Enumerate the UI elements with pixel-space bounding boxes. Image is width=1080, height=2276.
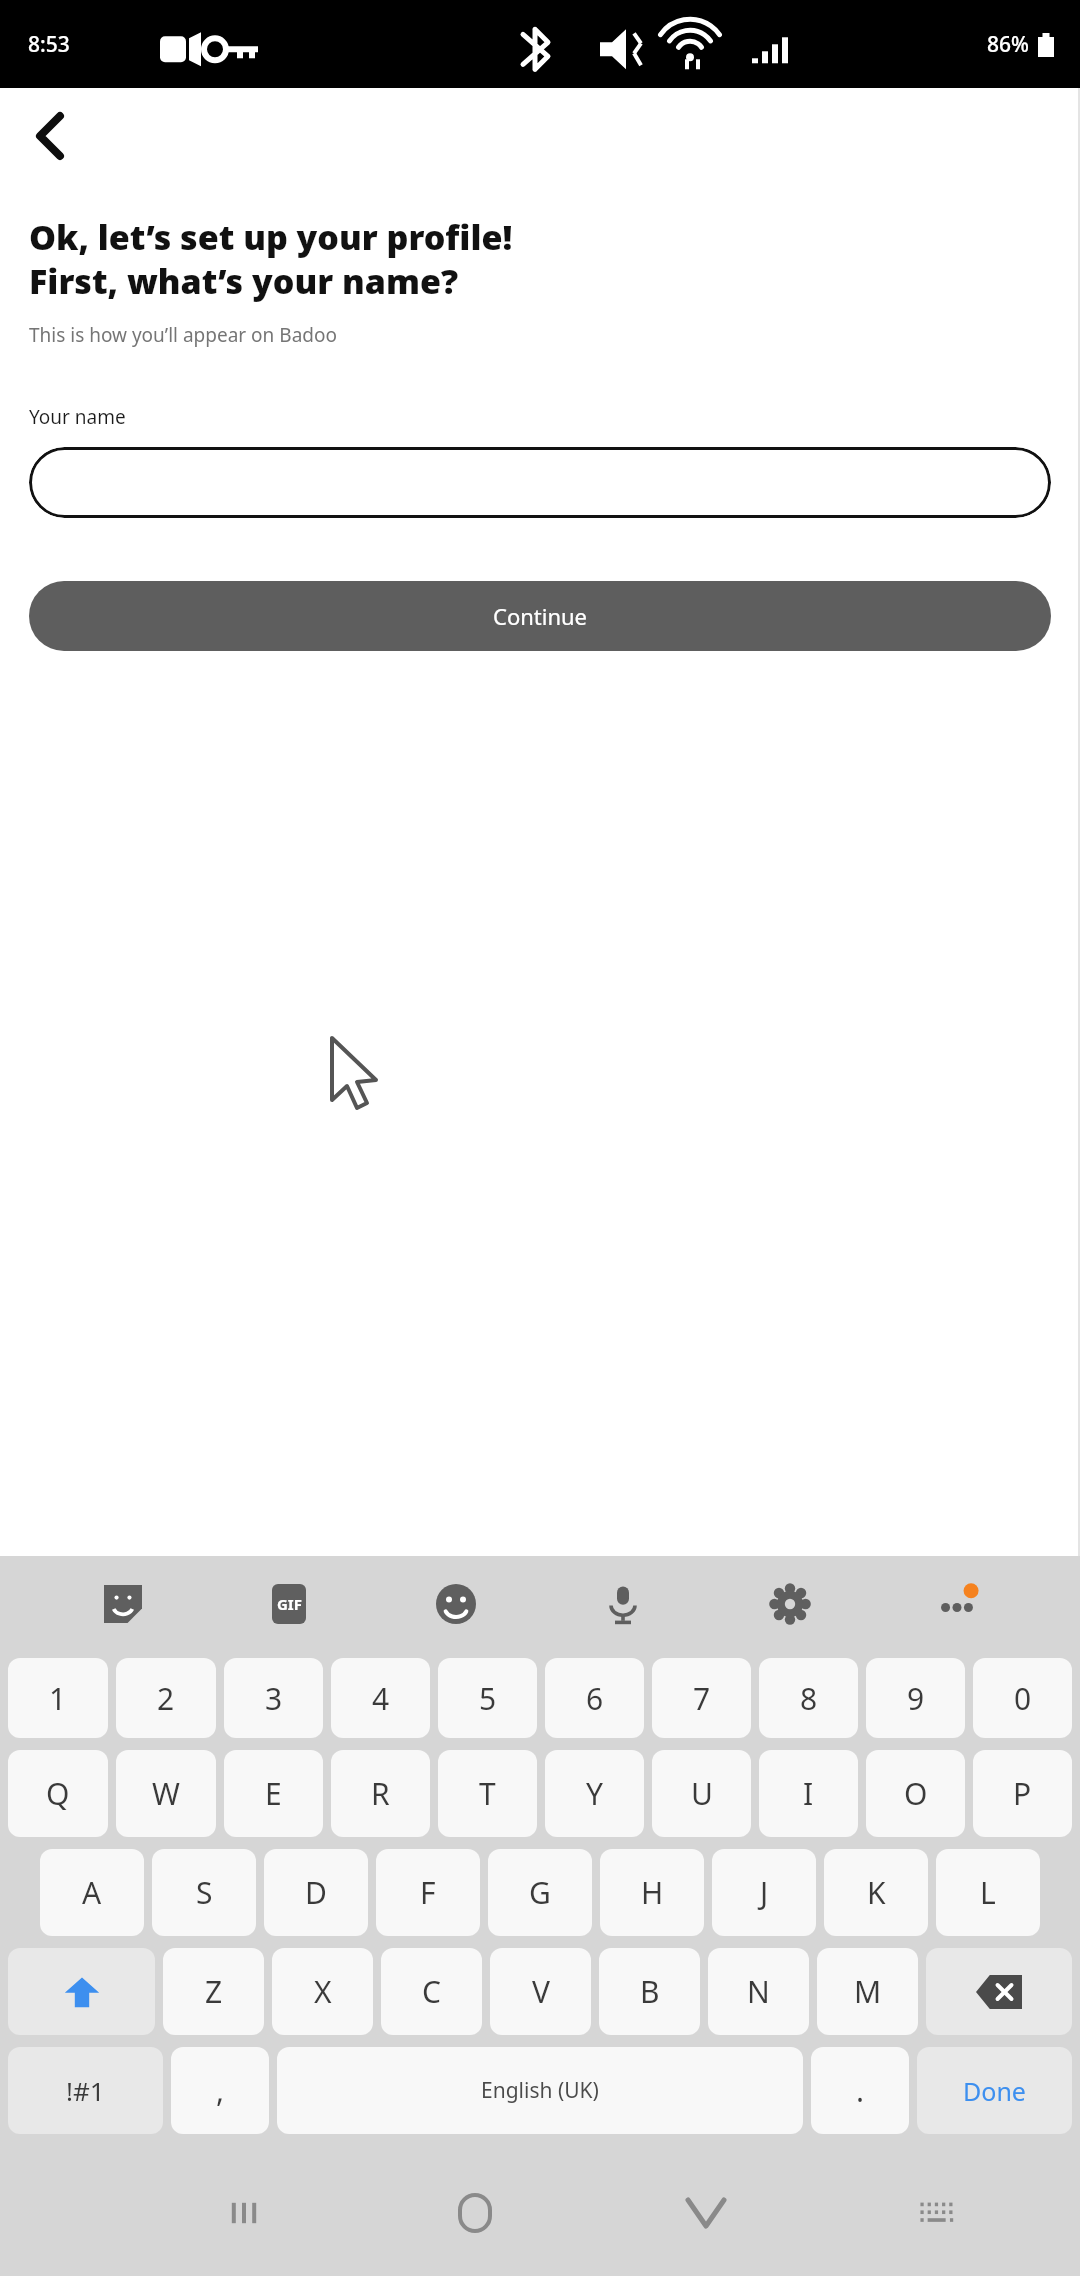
button[interactable]: K	[824, 1849, 928, 1936]
staticText: V	[532, 1971, 550, 2012]
button[interactable]: L	[936, 1849, 1040, 1936]
button[interactable]: J	[712, 1849, 816, 1936]
staticText: A	[82, 1872, 102, 1913]
button[interactable]: 3	[224, 1658, 323, 1738]
button[interactable]: Y	[545, 1750, 644, 1837]
staticText: 8	[800, 1678, 818, 1719]
staticText: ,	[216, 2070, 225, 2111]
staticText: J	[760, 1872, 769, 1913]
button[interactable]: Stickers	[40, 1556, 206, 1652]
button[interactable]: D	[264, 1849, 368, 1936]
button[interactable]: Settings	[706, 1556, 873, 1652]
button[interactable]	[29, 447, 1051, 518]
button[interactable]: W	[116, 1750, 216, 1837]
button[interactable]: Emoji	[372, 1556, 539, 1652]
button[interactable]: 2	[116, 1658, 216, 1738]
staticText: L	[980, 1872, 996, 1913]
button[interactable]: 5	[438, 1658, 537, 1738]
button[interactable]: O	[866, 1750, 965, 1837]
button[interactable]: Hide keyboard	[590, 2150, 821, 2276]
button[interactable]: Backspace	[926, 1948, 1072, 2035]
button[interactable]: H	[600, 1849, 704, 1936]
staticText: G	[529, 1872, 551, 1913]
button[interactable]: Voice input	[539, 1556, 706, 1652]
staticText: Z	[205, 1971, 223, 2012]
staticText: Done	[963, 2074, 1026, 2108]
button[interactable]: 7	[652, 1658, 751, 1738]
button[interactable]: ,	[171, 2047, 269, 2134]
staticText: Ok, let’s set up your profile! First, wh…	[29, 214, 513, 304]
staticText: 9	[907, 1678, 925, 1719]
staticText: B	[640, 1971, 660, 2012]
staticText: 5	[479, 1678, 497, 1719]
staticText: This is how you’ll appear on Badoo	[29, 322, 337, 348]
button[interactable]: 6	[545, 1658, 644, 1738]
button[interactable]: Switch keyboard	[821, 2150, 1052, 2276]
button[interactable]: S	[152, 1849, 256, 1936]
staticText: H	[641, 1872, 664, 1913]
button[interactable]: G	[488, 1849, 592, 1936]
staticText: 3	[265, 1678, 283, 1719]
staticText: F	[420, 1872, 436, 1913]
button[interactable]: 9	[866, 1658, 965, 1738]
staticText: 0	[1014, 1678, 1032, 1719]
button[interactable]: E	[224, 1750, 323, 1837]
staticText: I	[803, 1773, 814, 1814]
button[interactable]: .	[811, 2047, 909, 2134]
staticText: Your name	[29, 404, 126, 430]
staticText: P	[1013, 1773, 1032, 1814]
button[interactable]: Q	[8, 1750, 108, 1837]
button[interactable]: GIF	[206, 1556, 372, 1652]
staticText: X	[314, 1971, 332, 2012]
button[interactable]: 0	[973, 1658, 1072, 1738]
button[interactable]: Done	[917, 2047, 1072, 2134]
staticText: .	[856, 2070, 865, 2111]
staticText: Continue	[493, 601, 588, 631]
button[interactable]: M	[817, 1948, 918, 2035]
staticText: 6	[586, 1678, 604, 1719]
button[interactable]: English (UK)	[277, 2047, 803, 2134]
staticText: Q	[46, 1773, 70, 1814]
button[interactable]: More	[873, 1556, 1040, 1652]
button[interactable]: 4	[331, 1658, 430, 1738]
staticText: !#1	[66, 2073, 105, 2108]
staticText: 7	[693, 1678, 711, 1719]
staticText: R	[371, 1773, 390, 1814]
button[interactable]: U	[652, 1750, 751, 1837]
staticText: E	[265, 1773, 282, 1814]
staticText: D	[305, 1872, 327, 1913]
button[interactable]: Recent apps	[128, 2150, 359, 2276]
button[interactable]: B	[599, 1948, 700, 2035]
button[interactable]: Continue	[29, 581, 1051, 651]
button[interactable]: P	[973, 1750, 1072, 1837]
staticText: K	[867, 1872, 886, 1913]
button[interactable]: Back	[14, 100, 86, 172]
staticText: GIF	[277, 1594, 302, 1614]
button[interactable]: Shift	[8, 1948, 155, 2035]
staticText: 86%	[987, 30, 1029, 59]
staticText: 8:53	[28, 30, 70, 59]
button[interactable]: Home	[359, 2150, 590, 2276]
staticText: T	[479, 1773, 496, 1814]
staticText: C	[422, 1971, 441, 2012]
button[interactable]: 8	[759, 1658, 858, 1738]
button[interactable]: !#1	[8, 2047, 163, 2134]
button[interactable]: F	[376, 1849, 480, 1936]
button[interactable]: I	[759, 1750, 858, 1837]
staticText: English (UK)	[481, 2076, 599, 2105]
button[interactable]: R	[331, 1750, 430, 1837]
staticText: Y	[586, 1773, 603, 1814]
button[interactable]: A	[40, 1849, 144, 1936]
staticText: 1	[49, 1678, 67, 1719]
button[interactable]: X	[272, 1948, 373, 2035]
button[interactable]: C	[381, 1948, 482, 2035]
button[interactable]: V	[490, 1948, 591, 2035]
button[interactable]: Z	[163, 1948, 264, 2035]
button[interactable]: N	[708, 1948, 809, 2035]
staticText: W	[152, 1773, 180, 1814]
button[interactable]: 1	[8, 1658, 108, 1738]
staticText: S	[196, 1872, 213, 1913]
staticText: 2	[157, 1678, 175, 1719]
button[interactable]: T	[438, 1750, 537, 1837]
staticText: U	[691, 1773, 713, 1814]
